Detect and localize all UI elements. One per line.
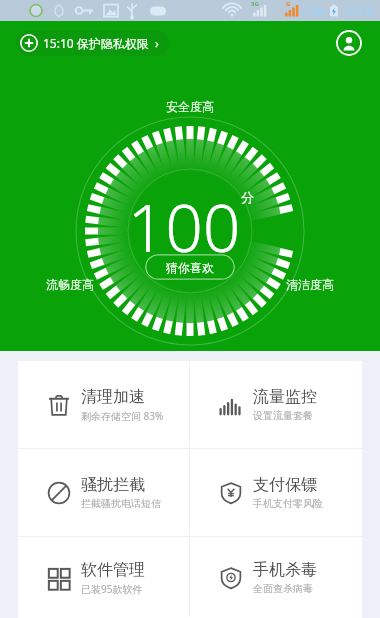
staticText: 安全度高 <box>166 99 214 114</box>
staticText: 拦截骚扰电话短信 <box>81 497 161 510</box>
staticText: G <box>286 0 291 8</box>
button[interactable]: 手机杀毒 <box>190 537 362 618</box>
staticText: 手机杀毒 <box>253 560 317 580</box>
staticText: 设置流量套餐 <box>253 409 313 422</box>
staticText: 100 <box>127 181 241 271</box>
staticText: 手机支付零风险 <box>253 497 323 510</box>
staticText: 流畅度高 <box>46 277 94 292</box>
button[interactable]: 骚扰拦截 <box>18 449 189 536</box>
staticText: 分 <box>241 189 254 205</box>
button[interactable]: 15:10 保护隐私权限 › <box>16 30 169 56</box>
staticText: 猜你喜欢 <box>166 260 214 275</box>
staticText: 支付保镖 <box>253 475 317 495</box>
staticText: 已装95款软件 <box>81 582 143 596</box>
staticText: 15:10 保护隐私权限 › <box>43 35 159 51</box>
staticText: 3G <box>251 0 259 8</box>
staticText: 全面查杀病毒 <box>253 582 313 595</box>
staticText: 骚扰拦截 <box>81 475 145 495</box>
staticText: 15:19 <box>343 3 374 19</box>
staticText: 流量监控 <box>253 387 317 407</box>
button[interactable]: 清理加速 <box>18 361 189 448</box>
button[interactable]: Profile <box>334 28 364 58</box>
staticText: 清洁度高 <box>286 277 334 292</box>
staticText: 清理加速 <box>81 387 145 407</box>
button[interactable]: 支付保镖 <box>190 449 362 536</box>
staticText: 剩余存储空间 83% <box>81 409 164 423</box>
button[interactable]: 流量监控 <box>190 361 362 448</box>
staticText: 77% <box>300 3 324 19</box>
staticText: 软件管理 <box>81 560 145 580</box>
button[interactable]: 猜你喜欢 <box>145 254 235 280</box>
button[interactable]: 软件管理 <box>18 537 189 618</box>
